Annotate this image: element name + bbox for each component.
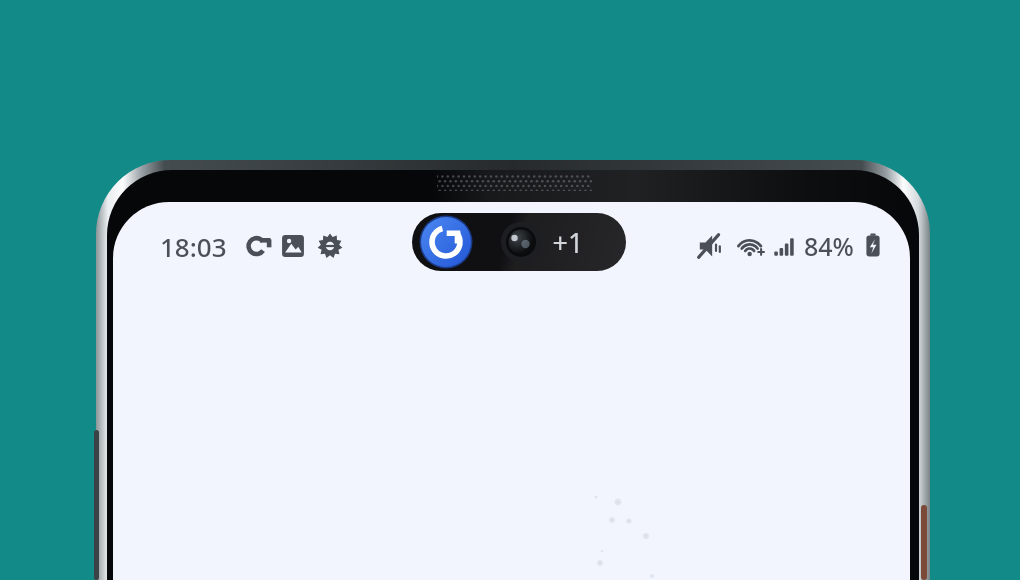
button[interactable]: Phone status bar preview [0, 0, 1020, 580]
